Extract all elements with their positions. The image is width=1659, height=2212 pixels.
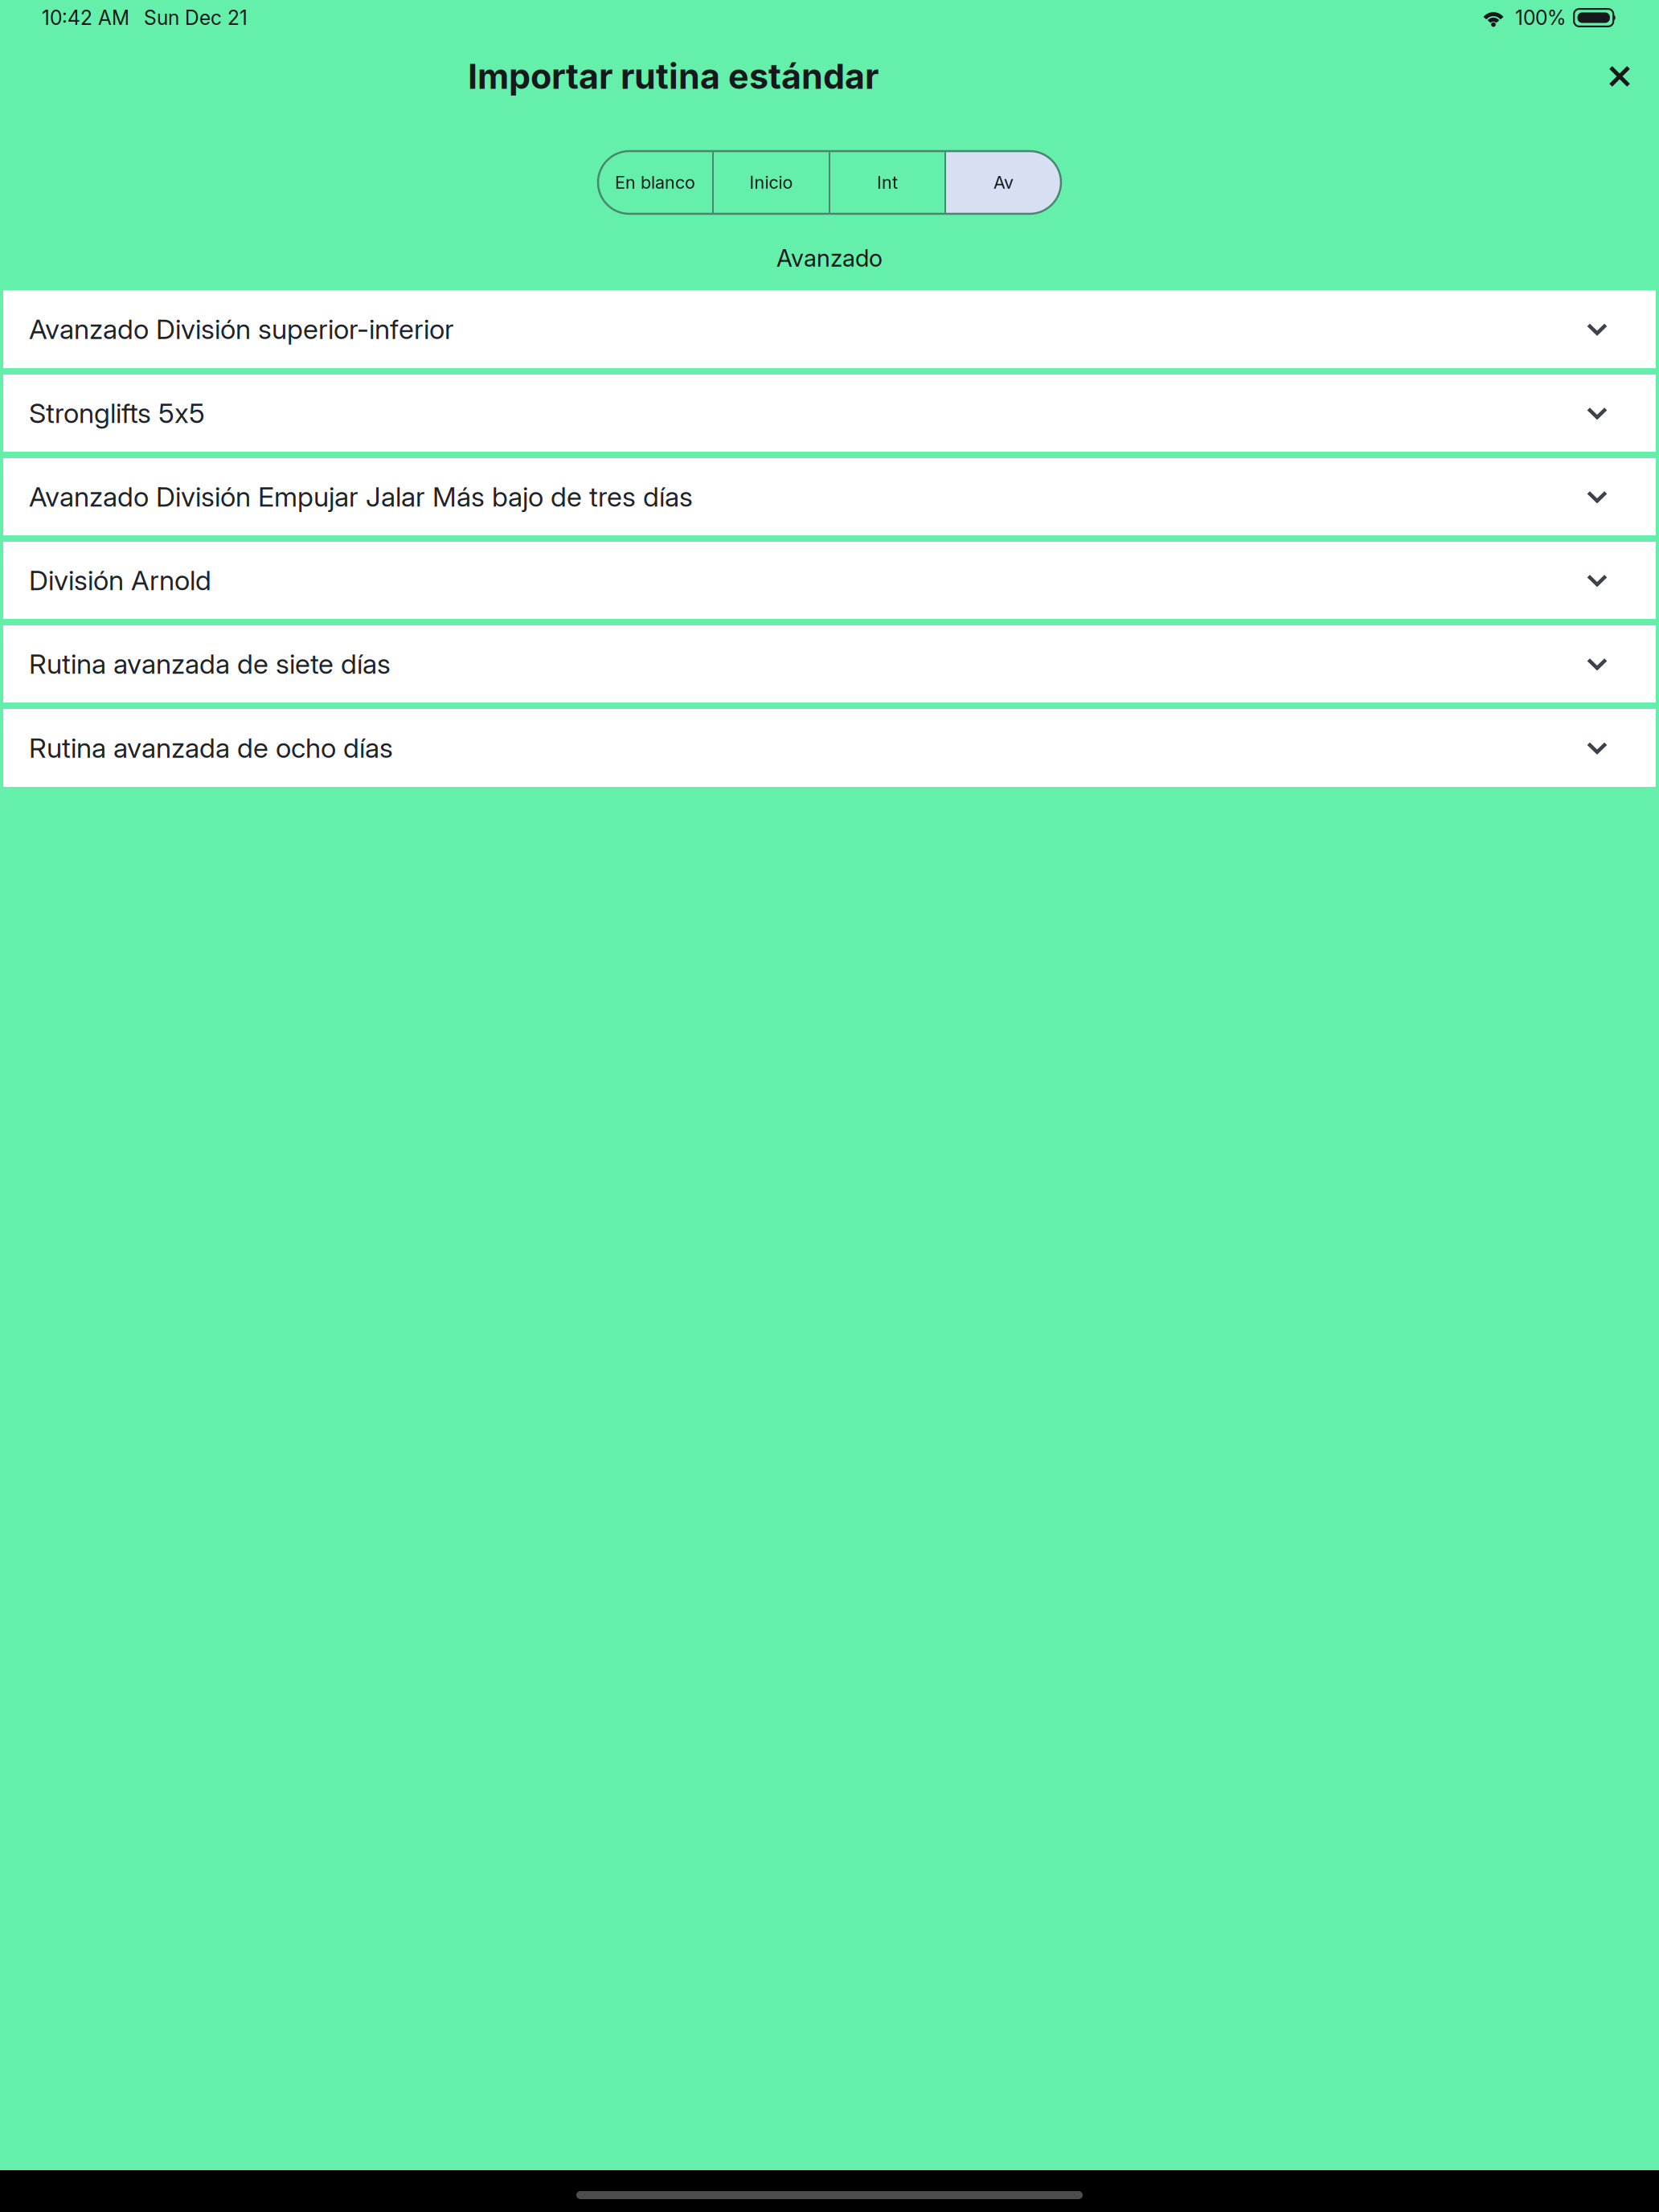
- button[interactable]: Stronglifts 5: [3, 375, 1656, 452]
- staticText: En blanco: [615, 172, 695, 193]
- staticText: Rutina avanzada de ocho días: [29, 731, 393, 764]
- button[interactable]: División Arnold: [3, 542, 1656, 619]
- staticText: División Arnold: [29, 564, 211, 597]
- staticText: Int: [877, 172, 898, 193]
- button[interactable]: Cerrar: [1580, 37, 1659, 116]
- button[interactable]: Rutina avanzada de ocho días: [3, 709, 1656, 787]
- button[interactable]: Rutina avanzada de siete días: [3, 625, 1656, 703]
- staticText: Inicio: [750, 172, 793, 193]
- staticText: x: [174, 397, 189, 430]
- staticText: 10:42 AM: [42, 6, 129, 30]
- staticText: Sun Dec 21: [144, 6, 248, 30]
- button[interactable]: En blanco: [598, 151, 712, 214]
- staticText: Avanzado: [776, 244, 883, 272]
- button[interactable]: Av: [946, 151, 1061, 214]
- button[interactable]: Avanzado División superior-inferior: [3, 290, 1656, 368]
- staticText: 100%: [1515, 6, 1566, 30]
- staticText: Rutina avanzada de siete días: [29, 647, 391, 680]
- staticText: Stronglifts 5: [29, 397, 174, 430]
- button[interactable]: Inicio: [714, 151, 829, 214]
- staticText: Av: [993, 172, 1014, 193]
- staticText: 5: [189, 397, 205, 430]
- staticText: Avanzado División superior-inferior: [29, 313, 454, 346]
- staticText: Importar rutina estándar: [468, 55, 879, 97]
- staticText: Avanzado División Empujar Jalar Más bajo…: [29, 480, 693, 513]
- button[interactable]: Int: [830, 151, 944, 214]
- button[interactable]: Avanzado División Empujar Jalar Más bajo…: [3, 458, 1656, 535]
